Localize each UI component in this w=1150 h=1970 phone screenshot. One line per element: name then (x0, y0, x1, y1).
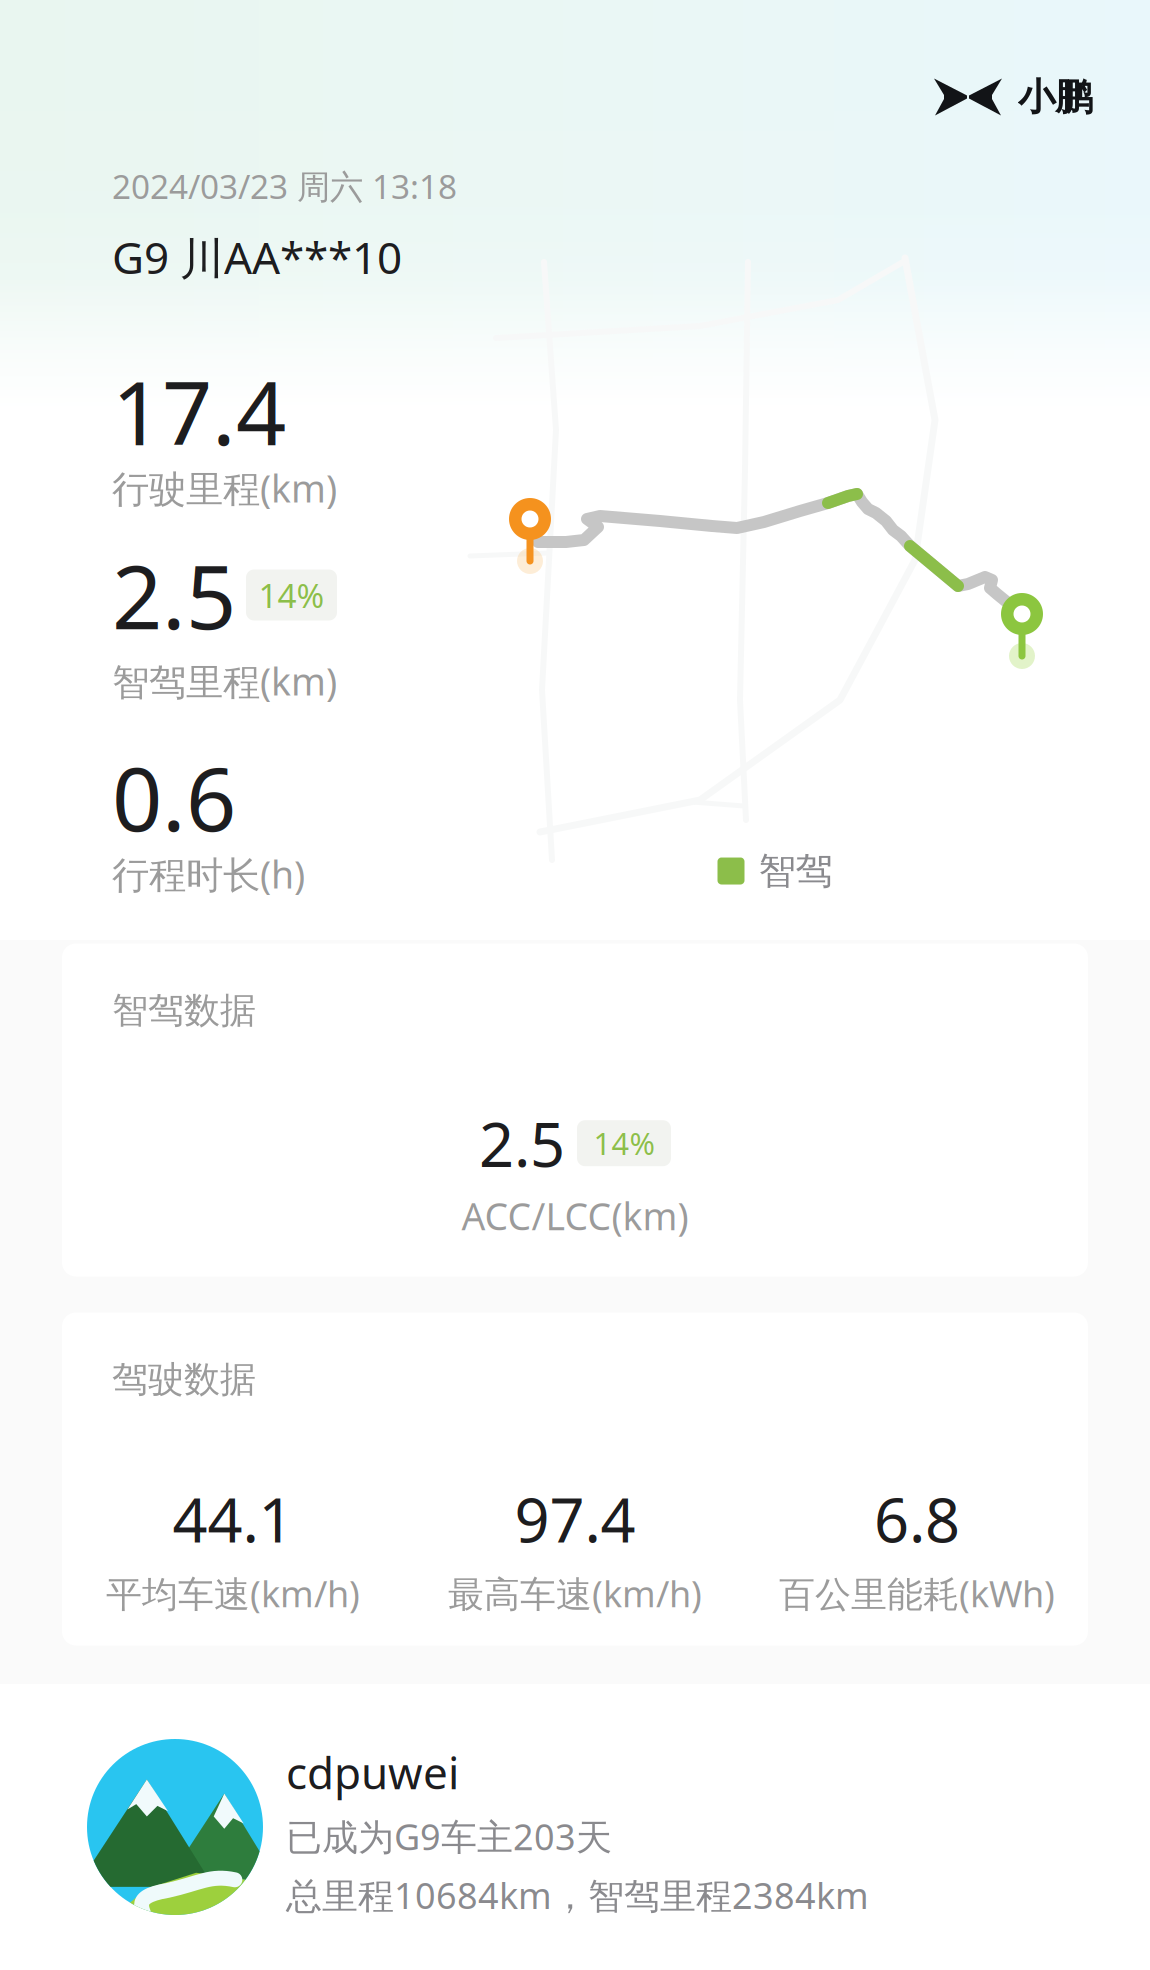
staticText: cdpuwei (286, 1743, 459, 1801)
staticText: 百公里能耗(kWh) (779, 1569, 1055, 1617)
staticText: 17.4 (112, 353, 286, 469)
staticText: 97.4 (514, 1478, 635, 1559)
staticText: 2024/03/23 周六 13:18 (112, 164, 457, 208)
staticText: 2.5 (479, 1102, 565, 1184)
staticText: 44.1 (172, 1478, 293, 1559)
staticText: 智驾里程(km) (112, 656, 337, 706)
staticText: 智驾 (758, 848, 832, 894)
staticText: 行驶里程(km) (112, 463, 337, 513)
staticText: ACC/LCC(km) (461, 1191, 688, 1240)
staticText: 14% (258, 573, 324, 617)
staticText: 已成为G9车主203天 (286, 1812, 612, 1860)
staticText: 行程时长(h) (112, 849, 305, 899)
staticText: 智驾数据 (112, 988, 256, 1033)
staticText: 0.6 (112, 739, 236, 855)
staticText: 小鹏 (1018, 74, 1092, 120)
staticText: 6.8 (874, 1478, 960, 1559)
staticText: 总里程10684km，智驾里程2384km (286, 1871, 869, 1919)
staticText: 平均车速(km/h) (106, 1569, 360, 1617)
button[interactable]: XPeng (934, 74, 1092, 120)
staticText: 驾驶数据 (112, 1357, 256, 1402)
button[interactable]: cdpuwei (0, 1684, 1150, 1970)
staticText: G9 川AA***10 (112, 228, 402, 286)
staticText: 14% (593, 1123, 654, 1163)
staticText: 2.5 (112, 537, 236, 653)
staticText: 最高车速(km/h) (448, 1569, 702, 1617)
